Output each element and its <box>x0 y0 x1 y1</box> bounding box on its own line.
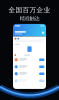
button[interactable] <box>13 63 46 70</box>
button[interactable] <box>13 70 46 77</box>
staticText: 全国百万企业 <box>8 6 50 14</box>
button[interactable] <box>13 56 46 63</box>
staticText: 精准触达 <box>19 15 39 22</box>
button[interactable] <box>13 77 46 84</box>
